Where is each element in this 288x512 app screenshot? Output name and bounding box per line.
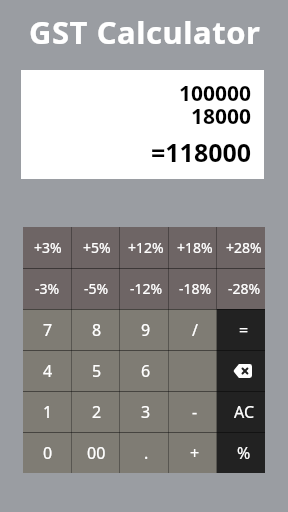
staticText: = (239, 319, 249, 341)
staticText: 00 (87, 442, 106, 464)
button[interactable]: 4 (23, 350, 72, 391)
staticText: -3% (35, 279, 60, 298)
staticText: 3 (141, 401, 151, 423)
staticText: 1 (43, 401, 53, 423)
button[interactable]: / (169, 309, 217, 350)
staticText: -5% (84, 279, 109, 298)
staticText: 0 (43, 442, 53, 464)
staticText: GST Calculator (29, 11, 261, 53)
button[interactable]: % (217, 432, 265, 473)
button[interactable]: 1 (23, 391, 72, 432)
button[interactable]: 00 (72, 432, 121, 473)
button[interactable]: 8 (72, 309, 121, 350)
button[interactable] (169, 350, 217, 391)
button[interactable]: AC (217, 391, 265, 432)
staticText: 100000 (179, 79, 252, 108)
staticText: =118000 (151, 135, 252, 169)
staticText: / (192, 319, 198, 341)
staticText: 7 (43, 319, 53, 341)
staticText: 5 (92, 360, 102, 382)
other: Backspace (233, 364, 252, 378)
button[interactable]: Backspace (217, 350, 265, 391)
button[interactable]: +28% (217, 227, 265, 268)
button[interactable]: 6 (121, 350, 169, 391)
staticText: -18% (179, 279, 212, 298)
staticText: +5% (83, 238, 111, 257)
staticText: AC (234, 401, 255, 423)
button[interactable]: -5% (72, 268, 121, 309)
button[interactable]: +18% (169, 227, 217, 268)
button[interactable]: 0 (23, 432, 72, 473)
button[interactable]: 2 (72, 391, 121, 432)
staticText: 4 (43, 360, 53, 382)
staticText: 9 (141, 319, 151, 341)
staticText: +28% (226, 238, 262, 257)
staticText: 18000 (191, 102, 252, 131)
button[interactable]: -3% (23, 268, 72, 309)
button[interactable]: 5 (72, 350, 121, 391)
button[interactable]: 9 (121, 309, 169, 350)
button[interactable]: 3 (121, 391, 169, 432)
staticText: +18% (177, 238, 213, 257)
staticText: % (237, 442, 251, 464)
button[interactable]: -18% (169, 268, 217, 309)
button[interactable]: 7 (23, 309, 72, 350)
button[interactable]: + (169, 432, 217, 473)
staticText: +3% (34, 238, 62, 257)
button[interactable]: -12% (121, 268, 169, 309)
button[interactable]: +5% (72, 227, 121, 268)
button[interactable]: +3% (23, 227, 72, 268)
staticText: +12% (128, 238, 164, 257)
button[interactable]: - (169, 391, 217, 432)
button[interactable]: +12% (121, 227, 169, 268)
staticText: -12% (130, 279, 163, 298)
button[interactable]: -28% (217, 268, 265, 309)
staticText: + (190, 442, 200, 464)
staticText: -28% (228, 279, 261, 298)
staticText: 8 (92, 319, 102, 341)
staticText: - (192, 401, 198, 423)
button[interactable]: = (217, 309, 265, 350)
staticText: . (144, 442, 149, 464)
button[interactable]: . (121, 432, 169, 473)
staticText: 2 (92, 401, 102, 423)
staticText: 6 (141, 360, 151, 382)
